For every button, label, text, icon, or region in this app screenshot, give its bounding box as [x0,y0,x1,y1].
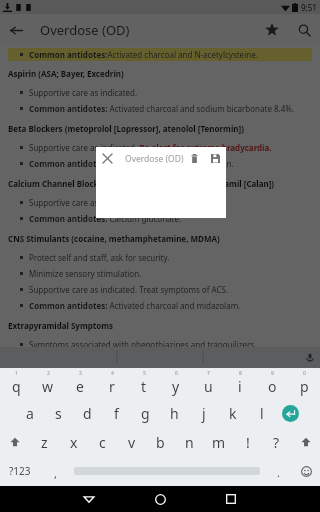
button[interactable]: , [40,456,70,486]
staticText: d [83,404,92,423]
staticText: Common antidotes: Activated charcoal and… [29,103,295,114]
staticText: p [300,377,309,396]
staticText: Supportive care as indicated. Treat symp… [29,284,229,295]
staticText: r [109,377,115,396]
staticText: , [54,466,57,481]
staticText: 0 [303,370,306,377]
staticText: . [277,465,280,480]
staticText: v [128,433,136,452]
button[interactable]: s [44,399,73,428]
button[interactable]: Back [76,486,102,512]
staticText: c [99,433,106,452]
button[interactable]: z [30,428,59,456]
staticText: CNS Stimulants (cocaine, methamphetamine… [8,233,220,244]
staticText: s [55,404,62,423]
button[interactable]: f [102,399,131,428]
button[interactable]: 0 [288,368,320,399]
button[interactable]: m [204,428,233,456]
button[interactable]: Close [96,147,119,170]
staticText: x [70,433,78,452]
button[interactable]: ?123 [0,456,40,486]
staticText: 9:51 [301,2,317,13]
button[interactable]: Save [205,148,226,169]
staticText: l [260,404,264,423]
staticText: Protect self and staff, ask for security… [29,252,170,263]
button[interactable]: 2 [32,368,64,399]
button[interactable]: Shift [291,428,320,456]
staticText: Overdose (OD) [125,153,184,165]
button[interactable]: Favorite [256,14,288,46]
button[interactable]: l [247,399,276,428]
staticText: t [141,377,147,396]
staticText: n [185,433,194,452]
staticText: Supportive care as indicated. Be alert f… [29,142,272,153]
button[interactable]: Search [288,14,320,46]
staticText: ! [246,433,250,452]
button[interactable]: 1 [0,368,32,399]
button[interactable]: k [218,399,247,428]
staticText: y [172,377,180,396]
button[interactable]: Shift [0,428,30,456]
button[interactable]: Voice input [299,347,320,368]
staticText: j [202,404,206,423]
button[interactable]: . [264,456,292,486]
staticText: Common antidotes:Activated charcoal and … [29,49,258,60]
button[interactable]: g [131,399,160,428]
button[interactable]: Back [0,14,32,46]
button[interactable]: Delete [184,148,205,169]
button[interactable]: h [160,399,189,428]
staticText: Minimize sensory stimulation. [29,268,142,279]
button[interactable]: Home [147,486,173,512]
staticText: Supportive care as indicated. [29,197,138,208]
staticText: 4 [111,370,114,377]
staticText: Common antidotes: Activated charcoal and… [29,158,234,169]
staticText: ? [273,433,280,452]
staticText: ?123 [9,464,31,478]
button[interactable]: b [146,428,175,456]
staticText: Overdose (OD) [40,21,130,39]
staticText: 2 [47,370,50,377]
button[interactable]: n [175,428,204,456]
staticText: f [114,404,119,423]
staticText: q [12,377,21,396]
staticText: g [141,404,150,423]
button[interactable]: Emoji [292,456,320,486]
staticText: m [212,433,226,452]
staticText: u [204,377,213,396]
button[interactable]: v [117,428,146,456]
button[interactable]: Enter [276,399,305,428]
staticText: k [229,404,237,423]
staticText: b [156,433,165,452]
button[interactable]: j [189,399,218,428]
staticText: 9 [271,370,274,377]
staticText: z [41,433,48,452]
staticText: o [268,377,277,396]
button[interactable]: ? [262,428,291,456]
staticText: Symptoms associated with phenothiazines … [29,339,257,347]
button[interactable]: 6 [160,368,192,399]
button[interactable]: Space [70,456,264,486]
staticText: 8 [239,370,242,377]
staticText: 6 [175,370,178,377]
staticText: 7 [207,370,210,377]
staticText: Calcium Channel Blockers (diltiazem [Car… [8,178,275,189]
button[interactable]: 5 [128,368,160,399]
staticText: 5 [143,370,146,377]
button[interactable]: Recent apps [218,486,244,512]
staticText: Beta Blockers (metoprolol [Lopressor], a… [8,123,244,134]
button[interactable]: a [15,399,44,428]
button[interactable]: 3 [64,368,96,399]
button[interactable]: 9 [256,368,288,399]
staticText: e [76,377,84,396]
button[interactable]: 7 [192,368,224,399]
staticText: h [170,404,179,423]
button[interactable]: ! [233,428,262,456]
button[interactable]: 4 [96,368,128,399]
button[interactable]: d [73,399,102,428]
button[interactable]: c [88,428,117,456]
staticText: Supportive care as indicated. [29,87,138,98]
button[interactable]: x [59,428,88,456]
staticText: a [26,404,34,423]
button[interactable]: 8 [224,368,256,399]
staticText: 1 [15,370,18,377]
